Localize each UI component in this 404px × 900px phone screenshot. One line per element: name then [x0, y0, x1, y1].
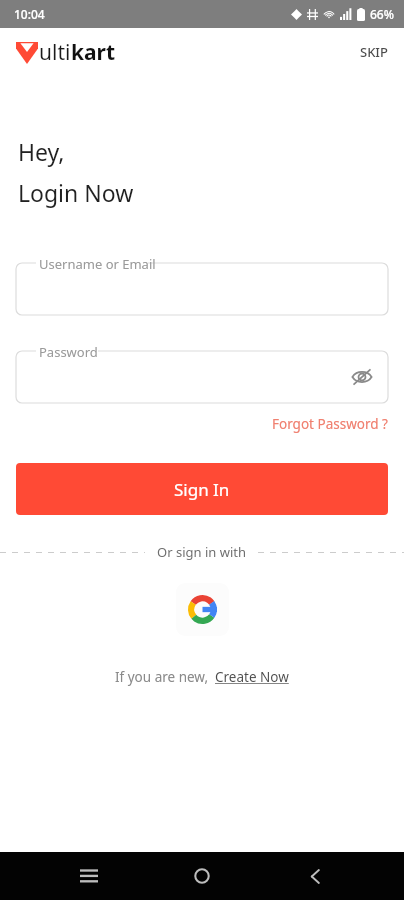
- button[interactable]: Home: [178, 852, 226, 900]
- staticText: Sign In: [174, 478, 230, 501]
- staticText: Username or Email: [39, 255, 156, 273]
- staticText: ulti: [39, 38, 71, 67]
- staticText: Password: [39, 343, 98, 361]
- staticText: 10:04: [14, 6, 45, 22]
- staticText: Login Now: [18, 177, 134, 208]
- staticText: Create Now: [215, 668, 289, 686]
- button[interactable]: Create Now: [215, 664, 289, 690]
- button[interactable]: Forgot Password ?: [272, 411, 404, 437]
- staticText: Hey,: [18, 136, 65, 167]
- button[interactable]: Back: [291, 852, 339, 900]
- staticText: Or sign in with: [157, 543, 246, 561]
- button[interactable]: Sign In: [16, 463, 388, 515]
- staticText: 66%: [370, 6, 394, 22]
- button[interactable]: Username or Email: [16, 253, 388, 315]
- staticText: SKIP: [360, 43, 388, 61]
- button[interactable]: Recents: [65, 852, 113, 900]
- button[interactable]: SKIP: [344, 33, 404, 71]
- button[interactable]: Show password: [350, 365, 374, 389]
- staticText: If you are new,: [115, 668, 209, 686]
- button[interactable]: Password: [16, 341, 388, 403]
- staticText: Forgot Password ?: [272, 415, 388, 433]
- button[interactable]: Sign in with Google: [176, 583, 229, 636]
- staticText: kart: [71, 38, 116, 67]
